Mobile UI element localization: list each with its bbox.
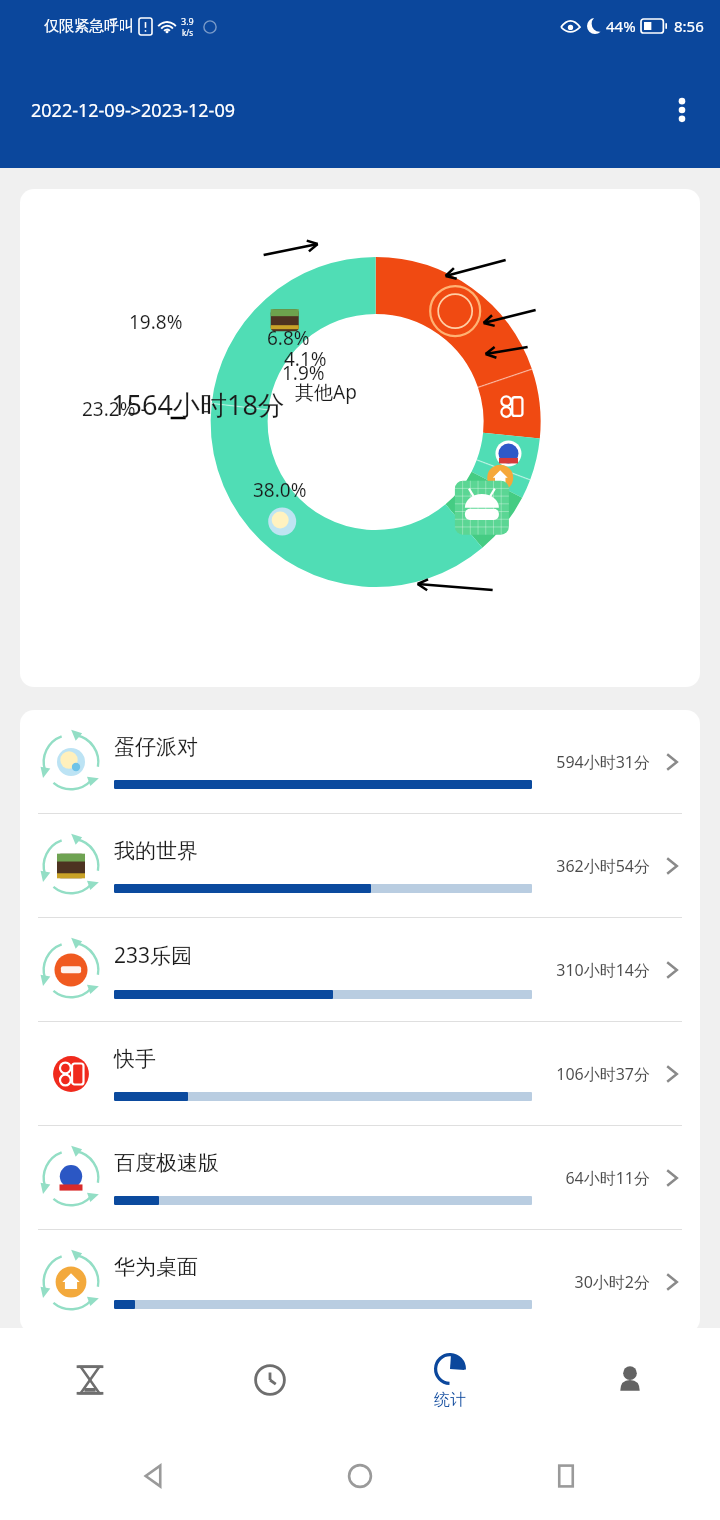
staticText: 23.2% -	[82, 396, 147, 422]
staticText: 64小时11分	[544, 1167, 650, 1189]
button[interactable]: 统计	[360, 1328, 540, 1432]
staticText: 1564小时18分	[98, 386, 298, 423]
button[interactable]: 快手	[20, 1022, 700, 1125]
staticText: 233乐园	[114, 941, 193, 970]
staticText: 其他Ap	[295, 379, 357, 405]
button[interactable]: Back	[128, 1450, 180, 1502]
staticText: 百度极速版	[114, 1150, 219, 1176]
staticText: 华为桌面	[114, 1254, 198, 1280]
button[interactable]: Profile	[540, 1328, 720, 1432]
button[interactable]: 233乐园	[20, 918, 700, 1021]
staticText: 6.8%	[267, 325, 310, 351]
staticText: 4.1%	[284, 346, 327, 372]
staticText: 快手	[114, 1046, 156, 1072]
staticText: 30小时2分	[544, 1271, 650, 1293]
staticText: 我的世界	[114, 838, 198, 864]
staticText: 仅限紧急呼叫	[44, 17, 134, 36]
staticText: 3.9	[181, 15, 194, 27]
staticText: 362小时54分	[544, 855, 650, 877]
button[interactable]: 华为桌面	[20, 1230, 700, 1333]
button[interactable]: 蛋仔派对	[20, 710, 700, 813]
staticText: 594小时31分	[544, 751, 650, 773]
button[interactable]: History	[180, 1328, 360, 1432]
staticText: 蛋仔派对	[114, 734, 198, 760]
staticText: 19.8%	[129, 309, 183, 335]
button[interactable]: More options	[654, 82, 710, 138]
button[interactable]: 百度极速版	[20, 1126, 700, 1229]
staticText: k/s	[182, 27, 194, 38]
staticText: 8:56	[674, 16, 704, 36]
button[interactable]: Recents	[540, 1450, 592, 1502]
button[interactable]: 我的世界	[20, 814, 700, 917]
staticText: 310小时14分	[544, 959, 650, 981]
staticText: 38.0%	[253, 477, 307, 503]
button[interactable]: Home	[334, 1450, 386, 1502]
staticText: 44%	[606, 16, 636, 36]
staticText: 1.9%	[282, 360, 325, 386]
staticText: 2022-12-09->2023-12-09	[31, 98, 236, 123]
staticText: 统计	[434, 1390, 466, 1410]
button[interactable]: Usage timer	[0, 1328, 180, 1432]
staticText: 106小时37分	[544, 1063, 650, 1085]
